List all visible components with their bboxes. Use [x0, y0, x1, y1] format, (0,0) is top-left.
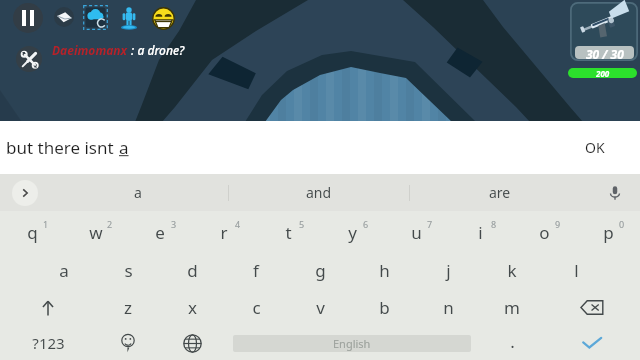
button[interactable]: q: [0, 214, 64, 251]
staticText: w: [89, 221, 103, 244]
staticText: but there isnt: [6, 136, 119, 159]
staticText: g: [315, 259, 326, 282]
button[interactable]: d: [160, 252, 224, 289]
staticText: v: [316, 296, 325, 319]
staticText: t: [285, 221, 292, 244]
button[interactable]: Emote: [152, 7, 175, 30]
staticText: 2: [107, 218, 113, 230]
staticText: l: [574, 259, 579, 282]
button[interactable]: k: [480, 252, 544, 289]
staticText: c: [252, 296, 261, 319]
button[interactable]: Weather tool: [83, 5, 108, 30]
staticText: 5: [299, 218, 305, 230]
staticText: OK: [585, 138, 605, 157]
button[interactable]: Change language: [160, 326, 224, 360]
button[interactable]: are: [410, 174, 590, 211]
staticText: 7: [427, 218, 433, 230]
staticText: Daeimomanx: [52, 42, 128, 58]
button[interactable]: v: [288, 289, 352, 326]
staticText: e: [155, 221, 165, 244]
button[interactable]: y: [320, 214, 384, 251]
staticText: i: [478, 221, 483, 244]
button[interactable]: f: [224, 252, 288, 289]
button[interactable]: o: [512, 214, 576, 251]
staticText: a: [134, 183, 142, 202]
button[interactable]: j: [416, 252, 480, 289]
staticText: b: [379, 296, 390, 319]
button[interactable]: n: [416, 289, 480, 326]
button[interactable]: x: [160, 289, 224, 326]
staticText: r: [220, 221, 228, 244]
staticText: 8: [491, 218, 497, 230]
button[interactable]: Messages: [54, 7, 74, 27]
staticText: d: [187, 259, 198, 282]
button[interactable]: w: [64, 214, 128, 251]
staticText: m: [504, 296, 520, 319]
button[interactable]: Settings: [16, 46, 42, 72]
staticText: a: [59, 259, 69, 282]
staticText: j: [446, 259, 451, 282]
staticText: a: [119, 136, 129, 159]
button[interactable]: u: [384, 214, 448, 251]
staticText: and: [306, 183, 332, 202]
button[interactable]: i: [448, 214, 512, 251]
button[interactable]: p: [576, 214, 640, 251]
staticText: .: [510, 330, 515, 353]
button[interactable]: Voice input: [590, 174, 640, 211]
button[interactable]: s: [96, 252, 160, 289]
staticText: x: [188, 296, 197, 319]
button[interactable]: Shift: [0, 289, 96, 326]
staticText: 1: [43, 218, 49, 230]
button[interactable]: g: [288, 252, 352, 289]
staticText: o: [539, 221, 550, 244]
staticText: 9: [555, 218, 561, 230]
button[interactable]: English: [233, 335, 471, 352]
button[interactable]: Backspace: [544, 289, 640, 326]
staticText: n: [443, 296, 454, 319]
staticText: q: [27, 221, 38, 244]
staticText: 6: [363, 218, 369, 230]
staticText: f: [253, 259, 259, 282]
button[interactable]: ?123: [0, 326, 96, 360]
button[interactable]: More suggestions: [12, 180, 38, 206]
button[interactable]: z: [96, 289, 160, 326]
button[interactable]: t: [256, 214, 320, 251]
button[interactable]: and: [229, 174, 409, 211]
button[interactable]: OK: [550, 121, 640, 174]
staticText: 30 / 30: [586, 46, 624, 59]
button[interactable]: m: [480, 289, 544, 326]
staticText: 200: [596, 68, 610, 78]
staticText: s: [124, 259, 133, 282]
staticText: k: [507, 259, 517, 282]
button[interactable]: .: [480, 324, 544, 358]
staticText: : a drone?: [128, 42, 185, 58]
staticText: English: [333, 336, 371, 351]
staticText: 0: [619, 218, 625, 230]
button[interactable]: h: [352, 252, 416, 289]
staticText: y: [348, 221, 357, 244]
button[interactable]: a: [48, 174, 228, 211]
staticText: h: [379, 259, 390, 282]
button[interactable]: b: [352, 289, 416, 326]
button[interactable]: Emoji: [96, 326, 160, 360]
button[interactable]: r: [192, 214, 256, 251]
staticText: 4: [235, 218, 241, 230]
staticText: z: [124, 296, 132, 319]
staticText: p: [603, 221, 614, 244]
staticText: are: [489, 183, 511, 202]
button[interactable]: e: [128, 214, 192, 251]
staticText: u: [411, 221, 422, 244]
button[interactable]: Pause: [13, 3, 43, 33]
button[interactable]: Enter: [544, 326, 640, 360]
staticText: 3: [171, 218, 177, 230]
button[interactable]: a: [32, 252, 96, 289]
button[interactable]: c: [224, 289, 288, 326]
staticText: ?123: [32, 333, 65, 353]
button[interactable]: l: [544, 252, 608, 289]
button[interactable]: Player beacon: [121, 6, 137, 31]
